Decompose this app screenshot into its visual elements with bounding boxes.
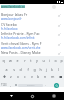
staticText: w — [9, 58, 12, 63]
button[interactable]: Back — [0, 92, 22, 100]
button[interactable]: Verit cheval libres - Rym F — [0, 39, 64, 49]
button[interactable]: y — [34, 57, 40, 64]
staticText: f — [27, 67, 29, 72]
button[interactable]: o — [52, 57, 58, 64]
button[interactable]: u — [40, 57, 46, 64]
button[interactable]: Emoji — [13, 81, 18, 89]
staticText: www.bonjour.fr — [1, 17, 22, 21]
button[interactable]: d — [17, 66, 24, 73]
staticText: a — [5, 67, 8, 72]
staticText: . — [45, 83, 46, 87]
button[interactable]: Insert suggestion — [54, 39, 64, 49]
button[interactable]: n — [42, 73, 49, 80]
button[interactable]: g — [31, 66, 37, 73]
button[interactable]: Infinite Prairie - Rym Fac — [0, 29, 64, 39]
staticText: www.facebook.com/fr — [1, 5, 25, 8]
staticText: i — [49, 58, 50, 63]
button[interactable]: e — [14, 57, 21, 64]
staticText: g — [33, 67, 36, 72]
staticText: c — [24, 74, 26, 79]
button[interactable]: h — [37, 66, 43, 73]
button[interactable]: Recents — [43, 92, 64, 100]
button[interactable]: . — [43, 81, 48, 89]
staticText: fr-fr.faceboo — [1, 27, 18, 31]
button[interactable]: ?123 — [0, 81, 8, 89]
button[interactable]: Shift — [0, 73, 8, 80]
button[interactable]: l — [55, 66, 61, 73]
staticText: d — [19, 67, 22, 72]
staticText: l — [58, 67, 59, 72]
staticText: Verit cheval libres - Rym F — [1, 41, 42, 46]
staticText: k — [51, 67, 53, 72]
button[interactable]: Search — [54, 83, 59, 88]
button[interactable]: q — [0, 57, 7, 64]
staticText: Bonjour labas Fr — [1, 12, 28, 17]
button[interactable]: Clear search — [52, 5, 56, 9]
staticText: m — [51, 74, 55, 79]
button[interactable]: t — [28, 57, 34, 64]
button[interactable]: v — [28, 73, 35, 80]
staticText: h — [39, 67, 42, 72]
staticText: z — [10, 74, 12, 79]
staticText: x — [17, 74, 19, 79]
staticText: English — [27, 84, 35, 87]
button[interactable]: Backspace — [56, 73, 64, 80]
button[interactable]: c — [21, 73, 28, 80]
button[interactable]: New Posts - Disney Make — [0, 48, 64, 58]
button[interactable]: x — [14, 73, 21, 80]
button[interactable]: a — [3, 66, 10, 73]
staticText: s — [13, 67, 15, 72]
staticText: v — [31, 74, 33, 79]
button[interactable]: s — [10, 66, 17, 73]
staticText: ?123 — [1, 83, 7, 87]
button[interactable]: CV facebo — [0, 20, 64, 30]
button[interactable]: f — [24, 66, 31, 73]
button[interactable]: Insert suggestion — [54, 20, 64, 30]
button[interactable]: , — [8, 81, 13, 89]
staticText: e — [16, 58, 19, 63]
button[interactable]: www.facebook.com/fr — [1, 5, 25, 8]
button[interactable]: Bonjour labas Fr — [0, 10, 64, 20]
button[interactable]: Space — [18, 81, 43, 89]
staticText: , — [10, 83, 11, 87]
button[interactable]: w — [7, 57, 14, 64]
staticText: Infinite Prairie - Rym Fac — [1, 31, 40, 36]
staticText: r — [24, 58, 26, 63]
button[interactable]: m — [49, 73, 56, 80]
button[interactable]: b — [35, 73, 42, 80]
staticText: www.facebook.com/verit-che — [1, 46, 41, 50]
staticText: p — [60, 58, 63, 63]
staticText: q — [2, 58, 5, 63]
staticText: CV facebo — [1, 22, 17, 27]
button[interactable]: Insert suggestion — [54, 48, 64, 58]
button[interactable]: k — [49, 66, 55, 73]
staticText: u — [42, 58, 45, 63]
button[interactable]: p — [58, 57, 64, 64]
button[interactable]: j — [43, 66, 49, 73]
button[interactable]: z — [8, 73, 14, 80]
button[interactable]: Home — [22, 92, 43, 100]
staticText: y — [36, 58, 38, 63]
button[interactable]: r — [21, 57, 28, 64]
staticText: b — [37, 74, 40, 79]
staticText: j — [46, 67, 47, 72]
button[interactable]: Insert suggestion — [54, 10, 64, 20]
staticText: fr-fr.facebook.com/infinit — [1, 36, 35, 40]
staticText: t — [30, 58, 32, 63]
button[interactable]: Insert suggestion — [54, 29, 64, 39]
staticText: New Posts - Disney Make — [1, 50, 41, 55]
staticText: o — [54, 58, 57, 63]
staticText: n — [44, 74, 47, 79]
button[interactable]: i — [46, 57, 52, 64]
